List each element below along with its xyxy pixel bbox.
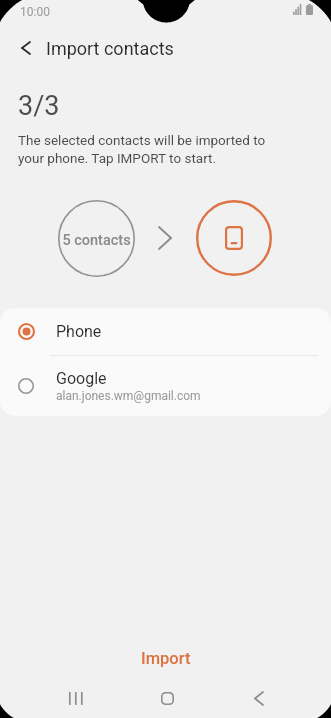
button[interactable]: Import bbox=[0, 641, 331, 675]
staticText: Import bbox=[141, 649, 191, 668]
button[interactable]: Recents bbox=[29, 684, 121, 713]
staticText: Phone bbox=[56, 322, 102, 341]
staticText: Google bbox=[56, 369, 107, 388]
button[interactable]: Navigate up bbox=[9, 31, 42, 64]
staticText: 10:00 bbox=[20, 5, 50, 19]
staticText: alan.jones.wm@gmail.com bbox=[56, 389, 201, 403]
staticText: Import contacts bbox=[46, 38, 174, 59]
button[interactable]: Phone bbox=[0, 308, 331, 355]
button[interactable]: Google bbox=[0, 356, 331, 416]
staticText: 3/3 bbox=[18, 90, 60, 122]
staticText: 5 contacts bbox=[58, 232, 135, 249]
button[interactable]: Home bbox=[121, 684, 213, 713]
button[interactable]: Back bbox=[213, 684, 305, 713]
staticText: The selected contacts will be imported t… bbox=[18, 132, 266, 166]
